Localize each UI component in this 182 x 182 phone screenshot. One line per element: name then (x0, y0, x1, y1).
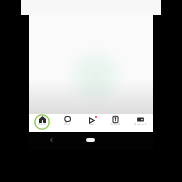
staticText: ホーム (38, 123, 46, 126)
button[interactable]: VOOM (80, 114, 102, 132)
button[interactable]: ウォレット (129, 114, 151, 132)
staticText: VOOM (89, 124, 94, 126)
staticText: トーク (63, 123, 71, 126)
staticText: ニュース (110, 123, 121, 126)
button[interactable]: ニュース (104, 114, 126, 132)
button[interactable]: ホーム (31, 114, 53, 132)
button[interactable]: Back (46, 133, 58, 145)
staticText: ウォレット (134, 123, 147, 126)
button[interactable]: Home (86, 138, 95, 142)
button[interactable]: トーク (56, 114, 78, 132)
